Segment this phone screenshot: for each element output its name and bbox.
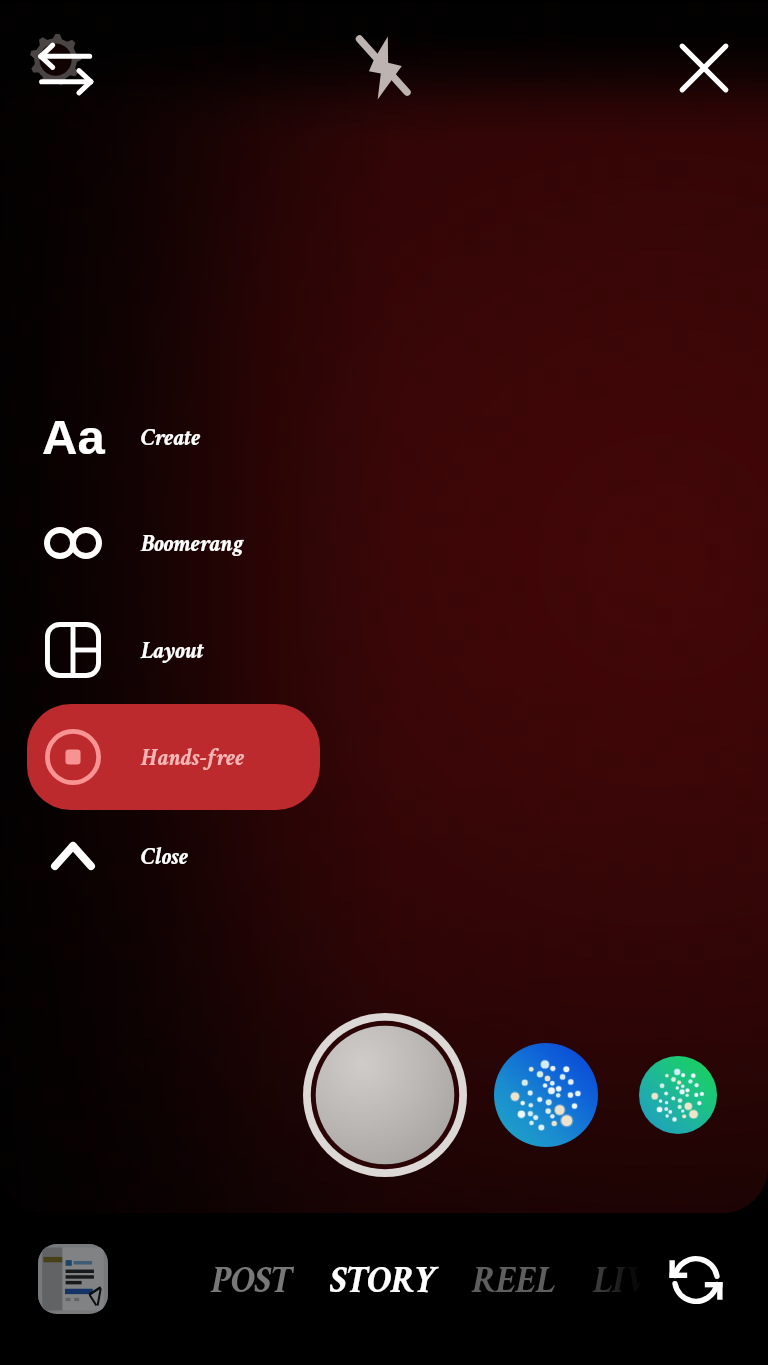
button[interactable]: Flash off [345, 28, 425, 108]
button[interactable] [20, 606, 340, 694]
button[interactable]: POST [199, 1248, 280, 1312]
staticText: Close [141, 841, 189, 872]
button[interactable]: REEL [460, 1248, 544, 1312]
button[interactable] [20, 499, 340, 587]
staticText: LIVE [593, 1256, 669, 1305]
button[interactable]: Bubbles effect [494, 1043, 598, 1147]
button[interactable]: Switch camera [656, 1240, 736, 1320]
button[interactable] [27, 704, 320, 810]
button[interactable] [20, 393, 340, 481]
staticText: Hands-free [141, 742, 245, 773]
staticText: Create [141, 422, 201, 453]
button[interactable]: Sparkle effect [639, 1056, 717, 1134]
button[interactable]: Camera settings [24, 28, 106, 110]
staticText: Layout [141, 635, 204, 666]
button[interactable]: LIVE [581, 1248, 657, 1312]
staticText: Boomerang [141, 528, 244, 559]
button[interactable]: Close [664, 28, 744, 108]
staticText: STORY [330, 1256, 439, 1305]
button[interactable]: Capture [303, 1013, 467, 1177]
button[interactable] [20, 812, 340, 900]
button[interactable]: STORY [318, 1248, 427, 1312]
button[interactable]: Gallery [38, 1244, 108, 1314]
staticText: POST [211, 1256, 292, 1305]
staticText: REEL [472, 1256, 556, 1305]
staticText: Aa [42, 410, 105, 465]
